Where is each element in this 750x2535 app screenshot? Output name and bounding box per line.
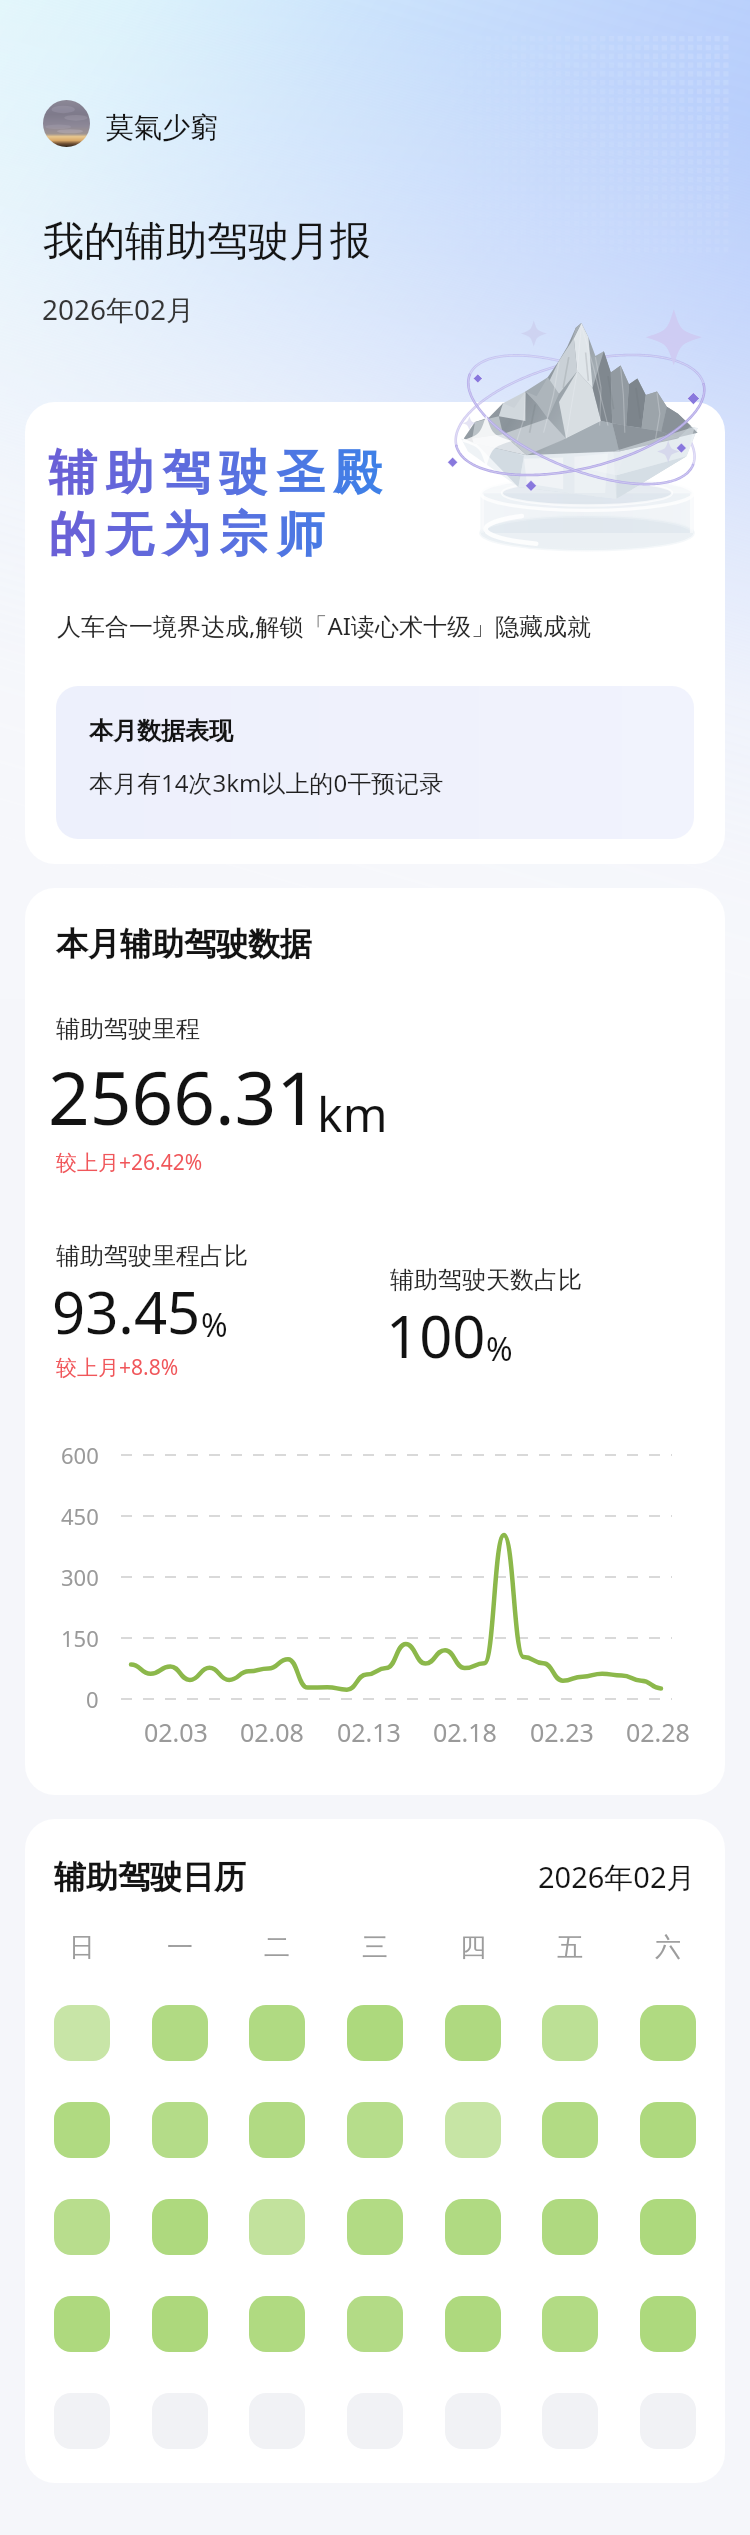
button[interactable] <box>640 2199 696 2255</box>
button[interactable] <box>249 2393 305 2449</box>
button[interactable] <box>640 2393 696 2449</box>
staticText: 2566.31 <box>48 1047 319 1146</box>
button[interactable] <box>542 2393 598 2449</box>
button[interactable] <box>445 2005 501 2061</box>
staticText: 莫氣少窮 <box>106 110 218 145</box>
button[interactable] <box>445 2102 501 2158</box>
button[interactable] <box>542 2296 598 2352</box>
staticText: 100 <box>386 1296 486 1375</box>
staticText: 辅助驾驶圣殿 <box>44 443 386 503</box>
staticText: 六 <box>655 1931 681 1964</box>
button[interactable] <box>249 2199 305 2255</box>
staticText: 02.28 <box>626 1715 690 1749</box>
staticText: 日 <box>69 1931 95 1964</box>
staticText: 93.45 <box>52 1272 201 1351</box>
staticText: 本月辅助驾驶数据 <box>56 924 312 964</box>
staticText: 较上月+8.8% <box>56 1353 179 1382</box>
staticText: 一 <box>167 1931 193 1964</box>
button[interactable] <box>54 2296 110 2352</box>
staticText: 辅助驾驶天数占比 <box>390 1265 582 1295</box>
staticText: 2026年02月 <box>42 290 195 328</box>
button[interactable] <box>542 2102 598 2158</box>
staticText: 150 <box>61 1623 99 1653</box>
staticText: 600 <box>61 1440 99 1470</box>
staticText: 02.18 <box>433 1715 497 1749</box>
button[interactable] <box>640 2296 696 2352</box>
button[interactable] <box>347 2005 403 2061</box>
staticText: 辅助驾驶里程占比 <box>56 1241 248 1271</box>
staticText: 我的辅助驾驶月报 <box>43 216 371 268</box>
button[interactable]: 莫氣少窮 <box>43 100 218 147</box>
button[interactable] <box>152 2199 208 2255</box>
button[interactable] <box>640 2005 696 2061</box>
staticText: 较上月+26.42% <box>56 1148 203 1177</box>
button[interactable] <box>54 2102 110 2158</box>
staticText: % <box>486 1327 513 1371</box>
button[interactable] <box>542 2199 598 2255</box>
button[interactable] <box>445 2393 501 2449</box>
staticText: 五 <box>557 1931 583 1964</box>
button[interactable] <box>347 2296 403 2352</box>
staticText: 四 <box>460 1931 486 1964</box>
staticText: 辅助驾驶日历 <box>54 1857 246 1897</box>
button[interactable] <box>152 2393 208 2449</box>
staticText: 三 <box>362 1931 388 1964</box>
button[interactable] <box>54 2199 110 2255</box>
staticText: 450 <box>61 1501 99 1531</box>
button[interactable] <box>249 2005 305 2061</box>
staticText: % <box>201 1303 228 1347</box>
staticText: km <box>317 1081 388 1146</box>
staticText: 02.13 <box>337 1715 401 1749</box>
button[interactable] <box>249 2102 305 2158</box>
button[interactable] <box>54 2005 110 2061</box>
button[interactable] <box>249 2296 305 2352</box>
button[interactable] <box>445 2199 501 2255</box>
staticText: 02.08 <box>240 1715 304 1749</box>
staticText: 二 <box>264 1931 290 1964</box>
button[interactable] <box>152 2005 208 2061</box>
button[interactable] <box>347 2102 403 2158</box>
button[interactable] <box>54 2393 110 2449</box>
button[interactable] <box>347 2393 403 2449</box>
staticText: 的无为宗师 <box>44 505 329 565</box>
staticText: 0 <box>86 1684 99 1714</box>
button[interactable] <box>445 2296 501 2352</box>
button[interactable] <box>152 2102 208 2158</box>
button[interactable] <box>152 2296 208 2352</box>
staticText: 辅助驾驶里程 <box>56 1014 200 1044</box>
staticText: 02.03 <box>144 1715 208 1749</box>
staticText: 02.23 <box>530 1715 594 1749</box>
staticText: 300 <box>61 1562 99 1592</box>
staticText: 2026年02月 <box>538 1857 696 1897</box>
button[interactable] <box>640 2102 696 2158</box>
staticText: 本月数据表现 <box>89 716 233 746</box>
staticText: 人车合一境界达成,解锁「AI读心术十级」隐藏成就 <box>57 609 591 642</box>
staticText: 本月有14次3km以上的0干预记录 <box>89 766 444 799</box>
button[interactable] <box>542 2005 598 2061</box>
button[interactable] <box>347 2199 403 2255</box>
